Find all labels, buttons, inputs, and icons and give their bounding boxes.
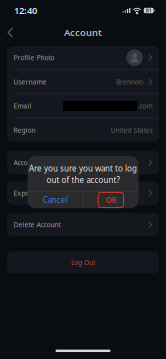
staticText: Delete Account xyxy=(13,220,60,229)
staticText: Log Out xyxy=(71,258,95,267)
staticText: 81 xyxy=(146,7,152,14)
staticText: Profile Photo xyxy=(13,53,54,62)
staticText: out of the account? xyxy=(46,175,119,185)
staticText: 12:40 xyxy=(14,4,37,17)
button[interactable]: Profile Photo xyxy=(7,46,159,69)
staticText: Account Privacy xyxy=(13,158,61,167)
staticText: Brennon xyxy=(116,77,143,86)
button[interactable]: Log Out xyxy=(7,251,159,273)
staticText: .com xyxy=(137,101,152,110)
staticText: OK xyxy=(105,195,116,205)
staticText: Email xyxy=(13,101,31,110)
staticText: Username xyxy=(13,77,46,86)
staticText: Account xyxy=(64,26,102,39)
staticText: Are you sure you want to log xyxy=(29,163,137,174)
button[interactable]: Username xyxy=(7,70,159,94)
staticText: Cancel xyxy=(43,195,68,205)
button[interactable]: Cancel xyxy=(27,192,83,208)
button[interactable]: OK xyxy=(83,192,138,208)
button[interactable]: Account Privacy xyxy=(7,151,159,174)
button[interactable]: Delete Account xyxy=(7,213,159,236)
staticText: United States xyxy=(110,126,152,134)
button[interactable]: Back xyxy=(2,22,19,42)
staticText: Export Data xyxy=(13,189,51,197)
button[interactable]: Export Data xyxy=(7,181,159,205)
staticText: Region xyxy=(13,126,35,134)
